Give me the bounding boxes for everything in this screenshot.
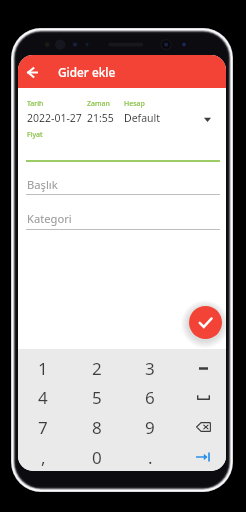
staticText: Hesap [124, 99, 145, 109]
button[interactable]: Hesap seç [202, 114, 212, 124]
button[interactable] [18, 442, 69, 471]
button[interactable]: Kaydet [189, 306, 222, 339]
staticText: Gider ekle [58, 64, 116, 80]
staticText: 4 [38, 386, 48, 409]
staticText: Default [124, 111, 161, 125]
staticText: 9 [145, 416, 155, 439]
staticText: 21:55 [87, 111, 114, 125]
button[interactable]: Sil [176, 412, 226, 442]
button[interactable] [69, 349, 123, 382]
staticText: 0 [92, 446, 102, 469]
staticText: , [41, 446, 46, 469]
staticText: 7 [38, 416, 48, 439]
staticText: 6 [145, 386, 155, 409]
staticText: Zaman [87, 99, 110, 109]
staticText: Tarih [27, 99, 44, 109]
button[interactable] [69, 382, 123, 412]
staticText: 5 [92, 386, 102, 409]
button[interactable] [69, 412, 123, 442]
button[interactable]: Boşluk [176, 382, 226, 412]
staticText: Kategori [27, 211, 72, 226]
staticText: . [148, 446, 153, 469]
button[interactable] [123, 382, 176, 412]
staticText: Başlık [27, 177, 58, 192]
button[interactable] [18, 382, 69, 412]
button[interactable] [69, 442, 123, 471]
staticText: Fiyat [27, 130, 43, 140]
button[interactable] [123, 412, 176, 442]
button[interactable] [123, 442, 176, 471]
other: İleri [196, 453, 210, 461]
button[interactable] [18, 349, 69, 382]
button[interactable]: Eksi [176, 349, 226, 382]
staticText: 2022-01-27 [27, 111, 82, 125]
other: Sil [196, 422, 211, 432]
button[interactable]: İleri [176, 442, 226, 471]
button[interactable] [123, 349, 176, 382]
staticText: 1 [38, 357, 48, 380]
button[interactable] [18, 412, 69, 442]
button[interactable]: Geri [20, 60, 44, 84]
staticText: 8 [92, 416, 102, 439]
staticText: 2 [92, 357, 102, 380]
staticText: 3 [145, 357, 155, 380]
